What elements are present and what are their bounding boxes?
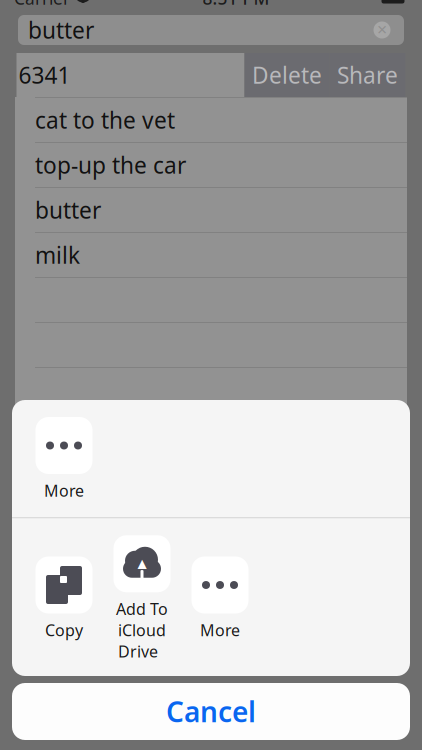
staticText: Delete xyxy=(252,60,322,90)
staticText: ✕ xyxy=(376,22,387,37)
staticText: Add To xyxy=(116,598,168,619)
button[interactable]: Clear search text xyxy=(370,18,394,42)
staticText: Cancel xyxy=(166,693,256,730)
staticText: butter xyxy=(35,195,101,225)
button[interactable]: butter xyxy=(15,188,407,233)
staticText: Carrier xyxy=(14,0,70,9)
staticText: More xyxy=(44,480,84,501)
staticText: top-up the car xyxy=(35,150,186,180)
button[interactable]: milk xyxy=(15,233,407,278)
staticText: cat to the vet xyxy=(35,105,175,135)
button[interactable]: cat to the vet xyxy=(15,98,407,143)
staticText: iCloud Drive xyxy=(118,619,166,662)
button[interactable]: ▲ xyxy=(104,535,180,662)
staticText: ▲ xyxy=(137,556,146,570)
staticText: 8:51 PM xyxy=(202,0,269,9)
button[interactable]: Copy xyxy=(26,556,102,641)
staticText: Share xyxy=(337,60,398,90)
button[interactable]: top-up the car xyxy=(15,143,407,188)
button[interactable]: Delete xyxy=(244,53,329,97)
button[interactable]: More xyxy=(182,556,258,641)
staticText: 6341 xyxy=(18,60,70,90)
staticText: Copy xyxy=(45,619,83,641)
staticText: milk xyxy=(35,240,80,270)
button[interactable]: Share xyxy=(329,53,405,97)
staticText: butter xyxy=(28,15,94,45)
button[interactable]: Cancel xyxy=(12,683,410,740)
button[interactable]: More xyxy=(26,417,102,501)
staticText: More xyxy=(200,619,240,641)
